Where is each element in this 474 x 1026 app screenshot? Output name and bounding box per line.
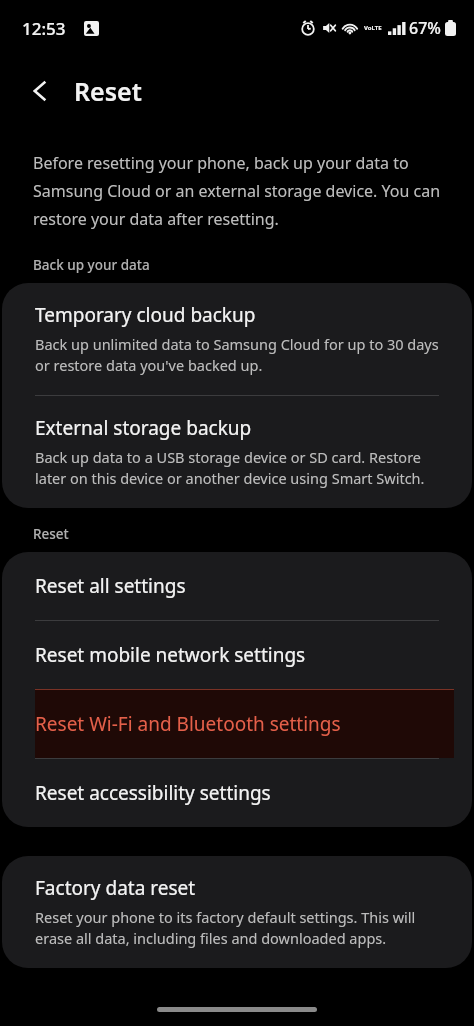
staticText: Back up your data xyxy=(33,256,150,274)
button[interactable]: Temporary cloud backup xyxy=(2,283,472,395)
staticText: External storage backup xyxy=(35,415,252,441)
staticText: Factory data reset xyxy=(35,875,196,901)
button[interactable]: Reset accessibility settings xyxy=(2,759,472,827)
staticText: Back up unlimited data to Samsung Cloud … xyxy=(35,334,442,376)
staticText: 67% xyxy=(409,17,441,39)
button[interactable]: Reset mobile network settings xyxy=(2,621,472,689)
staticText: Reset mobile network settings xyxy=(35,642,306,668)
button[interactable]: External storage backup xyxy=(2,396,472,508)
button[interactable]: Back xyxy=(16,67,64,115)
staticText: Reset xyxy=(33,525,69,543)
staticText: Temporary cloud backup xyxy=(35,302,256,328)
button[interactable]: Reset all settings xyxy=(2,552,472,620)
staticText: Back up data to a USB storage device or … xyxy=(35,447,442,489)
button[interactable]: Reset Wi-Fi and Bluetooth settings xyxy=(35,690,454,758)
staticText: VoLTE xyxy=(364,24,382,32)
staticText: Reset your phone to its factory default … xyxy=(35,907,442,949)
staticText: Reset all settings xyxy=(35,573,186,599)
staticText: Reset Wi-Fi and Bluetooth settings xyxy=(35,711,341,737)
staticText: 12:53 xyxy=(22,17,66,40)
staticText: Before resetting your phone, back up you… xyxy=(33,152,444,230)
staticText: Reset xyxy=(74,74,142,108)
staticText: Reset accessibility settings xyxy=(35,780,271,806)
button[interactable]: Factory data reset xyxy=(2,856,472,968)
